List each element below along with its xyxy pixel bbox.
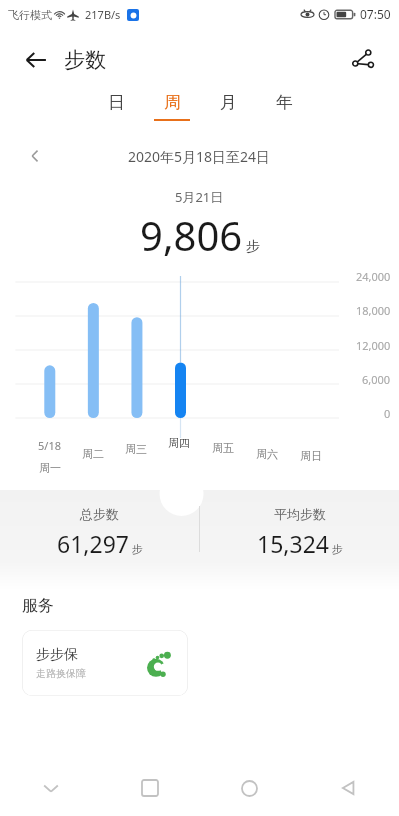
staticText: 12,000 (356, 338, 391, 353)
staticText: 服务 (22, 596, 54, 616)
other: Back (14, 38, 58, 82)
staticText: 15,324 (257, 528, 329, 559)
staticText: 步数 (64, 47, 106, 73)
staticText: 0 (384, 406, 391, 421)
staticText: 周 (164, 92, 181, 113)
button[interactable]: Back (14, 38, 106, 82)
staticText: 5月21日 (175, 188, 224, 206)
staticText: 月 (220, 92, 237, 113)
staticText: 周六 (256, 447, 278, 461)
staticText: 周四 (168, 436, 190, 450)
staticText: 步步保 (36, 646, 78, 664)
staticText: 年 (276, 92, 293, 113)
button[interactable]: Recents (127, 765, 173, 811)
staticText: 日 (108, 92, 125, 113)
staticText: 步 (132, 542, 143, 556)
staticText: 周三 (125, 442, 147, 456)
staticText: 总步数 (80, 506, 119, 522)
staticText: 步 (246, 238, 260, 256)
staticText: 平均步数 (274, 506, 326, 522)
staticText: 5/18 (38, 438, 61, 453)
staticText: 周五 (212, 441, 234, 455)
staticText: 07:50 (360, 6, 391, 22)
staticText: 走路换保障 (36, 667, 86, 680)
button[interactable]: 总步数 (0, 506, 199, 559)
staticText: 6,000 (362, 372, 391, 387)
staticText: 217B/s (85, 7, 121, 22)
staticText: 2020年5月18日至24日 (128, 147, 271, 166)
button[interactable]: Share (341, 38, 385, 82)
staticText: 18,000 (356, 303, 391, 318)
staticText: 步 (332, 542, 343, 556)
button[interactable]: Home (226, 765, 272, 811)
staticText: 9,806 (140, 208, 243, 262)
staticText: 24,000 (356, 269, 391, 284)
button[interactable]: 日 (88, 92, 144, 134)
staticText: 飞行模式 (8, 8, 52, 22)
button[interactable]: 月 (200, 92, 256, 134)
button[interactable]: 平均步数 (200, 506, 399, 559)
button[interactable]: 周 (144, 92, 200, 134)
staticText: 61,297 (57, 528, 129, 559)
button[interactable]: Hide keyboard (28, 765, 74, 811)
button[interactable]: 步步保 (22, 630, 188, 696)
button[interactable]: Back (325, 765, 371, 811)
staticText: 周一 (39, 461, 61, 475)
staticText: 周日 (300, 449, 322, 463)
button[interactable]: Previous week (18, 139, 52, 173)
staticText: 周二 (82, 447, 104, 461)
button[interactable]: 年 (256, 92, 312, 134)
